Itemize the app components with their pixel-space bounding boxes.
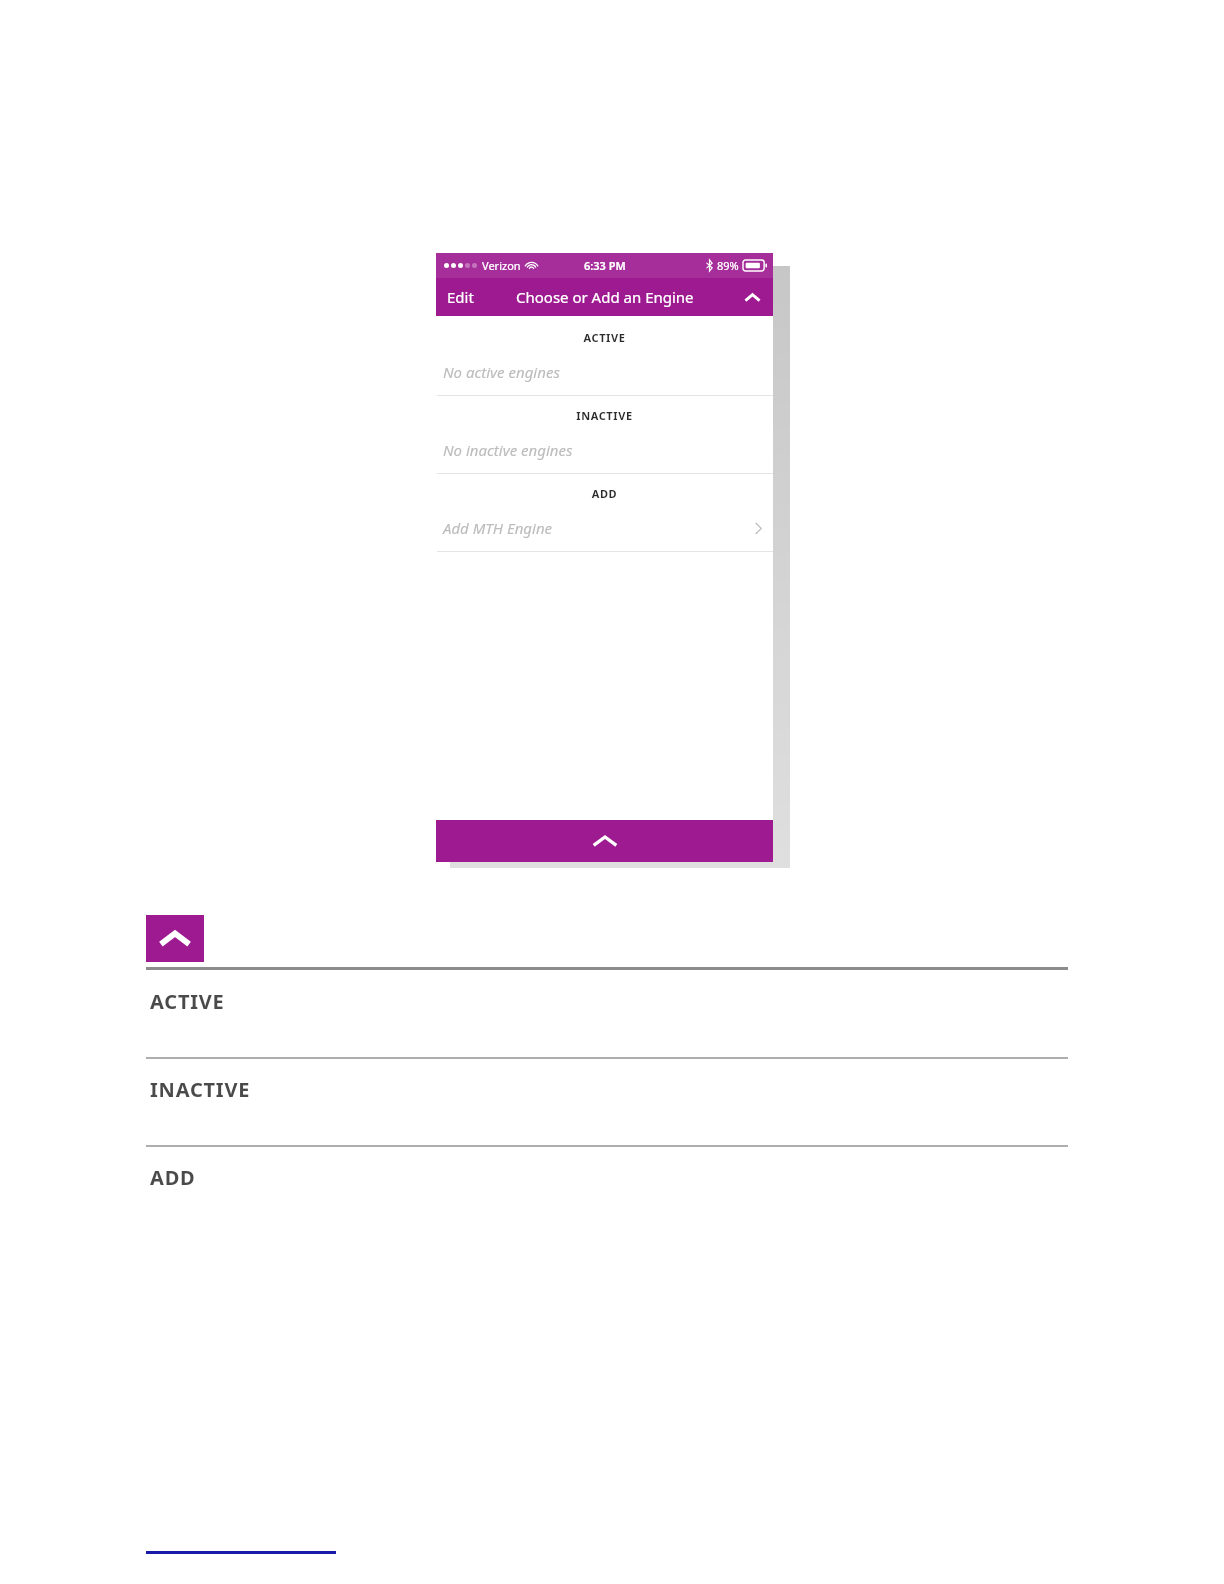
staticText: INACTIVE xyxy=(150,1076,251,1103)
button[interactable]: No inactive engines xyxy=(436,427,773,473)
staticText: 6:33 PM xyxy=(584,258,626,273)
staticText: Edit xyxy=(447,287,474,307)
button[interactable]: Edit xyxy=(436,280,484,314)
staticText: ACTIVE xyxy=(150,988,225,1015)
button[interactable]: No active engines xyxy=(436,349,773,395)
staticText: ADD xyxy=(436,486,773,501)
staticText: INACTIVE xyxy=(436,408,773,423)
staticText: ADD xyxy=(150,1164,196,1191)
button[interactable]: Collapse panel xyxy=(436,820,773,862)
staticText: Verizon xyxy=(482,258,521,273)
button[interactable]: Add MTH Engine xyxy=(436,505,773,551)
staticText: No active engines xyxy=(443,362,560,382)
staticText: Add MTH Engine xyxy=(443,518,553,538)
button[interactable]: Collapse xyxy=(146,915,204,962)
staticText: Choose or Add an Engine xyxy=(516,287,694,307)
staticText: 89% xyxy=(717,258,739,273)
staticText: ACTIVE xyxy=(436,330,773,345)
button[interactable]: Collapse xyxy=(732,281,773,314)
staticText: No inactive engines xyxy=(443,440,573,460)
